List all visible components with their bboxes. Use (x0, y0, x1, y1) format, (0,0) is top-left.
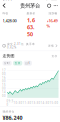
staticText: 分时 (4, 61, 10, 65)
staticText: 10:30 (13, 101, 22, 105)
staticText: 11:30 (22, 101, 31, 105)
staticText: 我的持仓 (2, 110, 14, 113)
staticText: 走势图 (2, 54, 14, 58)
staticText: 15:00 (49, 101, 58, 105)
button[interactable]: 我的持仓 (0, 108, 60, 122)
staticText: 14:30 (40, 101, 49, 105)
staticText: 贵州茅台 (20, 2, 40, 9)
staticText: 最新价 (26, 12, 35, 15)
staticText: 1600 (2, 76, 6, 83)
staticText: +16.49% (46, 18, 57, 29)
staticText: 日K (25, 61, 30, 65)
button[interactable]: More (52, 3, 59, 8)
button[interactable]: 日K (24, 61, 32, 66)
button[interactable]: 五日 (13, 61, 22, 65)
button[interactable]: Back (1, 2, 8, 10)
staticText: 1400 (2, 91, 6, 98)
staticText: 1,428.00 (2, 18, 16, 23)
staticText: 成交 2.31亿 换手率 0.42% (7, 42, 35, 49)
staticText: 1500 (2, 83, 6, 90)
staticText: 复权 (51, 54, 57, 58)
button[interactable]: 分时 (2, 61, 12, 65)
staticText: 详情 (48, 44, 54, 47)
staticText: 9:41 (2, 0, 12, 2)
staticText: 13:30 (31, 101, 40, 105)
button[interactable]: 成交 2.31亿 换手率 0.42% (0, 41, 60, 51)
staticText: 涨跌幅 (48, 12, 57, 15)
button[interactable]: Search (46, 2, 52, 9)
staticText: 五日 (15, 61, 21, 65)
staticText: ¥86,240 (2, 114, 22, 121)
staticText: 昨收 (2, 12, 8, 15)
staticText: 1700 (2, 69, 6, 76)
staticText: 1,663.50 (27, 17, 35, 38)
staticText: 09:30 (6, 99, 13, 106)
